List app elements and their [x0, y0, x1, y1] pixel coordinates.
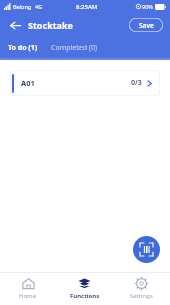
- staticText: Belong: [13, 3, 32, 10]
- button[interactable]: Home: [0, 272, 56, 305]
- staticText: Completed (0): [51, 43, 98, 53]
- staticText: Home: [19, 292, 37, 300]
- staticText: A01: [21, 78, 35, 88]
- staticText: 8:25AM: [76, 3, 98, 11]
- staticText: To do (1): [8, 43, 38, 53]
- staticText: 0/3: [131, 78, 142, 88]
- button[interactable]: Functions: [56, 272, 113, 305]
- staticText: Stocktake: [28, 19, 73, 31]
- staticText: Functions: [70, 292, 100, 300]
- button[interactable]: Back: [7, 17, 23, 33]
- button[interactable]: Settings: [113, 272, 170, 305]
- button[interactable]: Completed (0): [51, 36, 98, 60]
- staticText: Save: [139, 21, 154, 30]
- staticText: 90%: [142, 3, 153, 10]
- button[interactable]: Save: [129, 18, 163, 32]
- staticText: Settings: [130, 292, 153, 300]
- staticText: 4G: [35, 3, 43, 10]
- button[interactable]: A01: [10, 70, 160, 96]
- button[interactable]: To do (1): [8, 36, 38, 60]
- button[interactable]: Scan barcode: [133, 236, 160, 263]
